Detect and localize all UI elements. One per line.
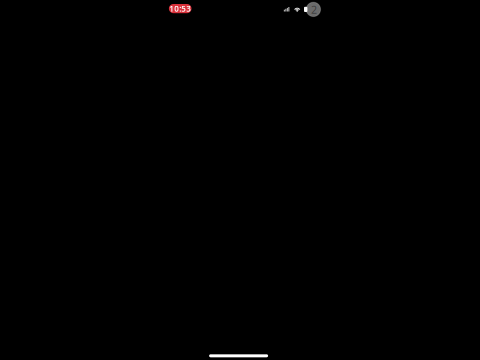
staticText: 10:53 [169,3,191,14]
staticText: 2 [311,2,317,17]
